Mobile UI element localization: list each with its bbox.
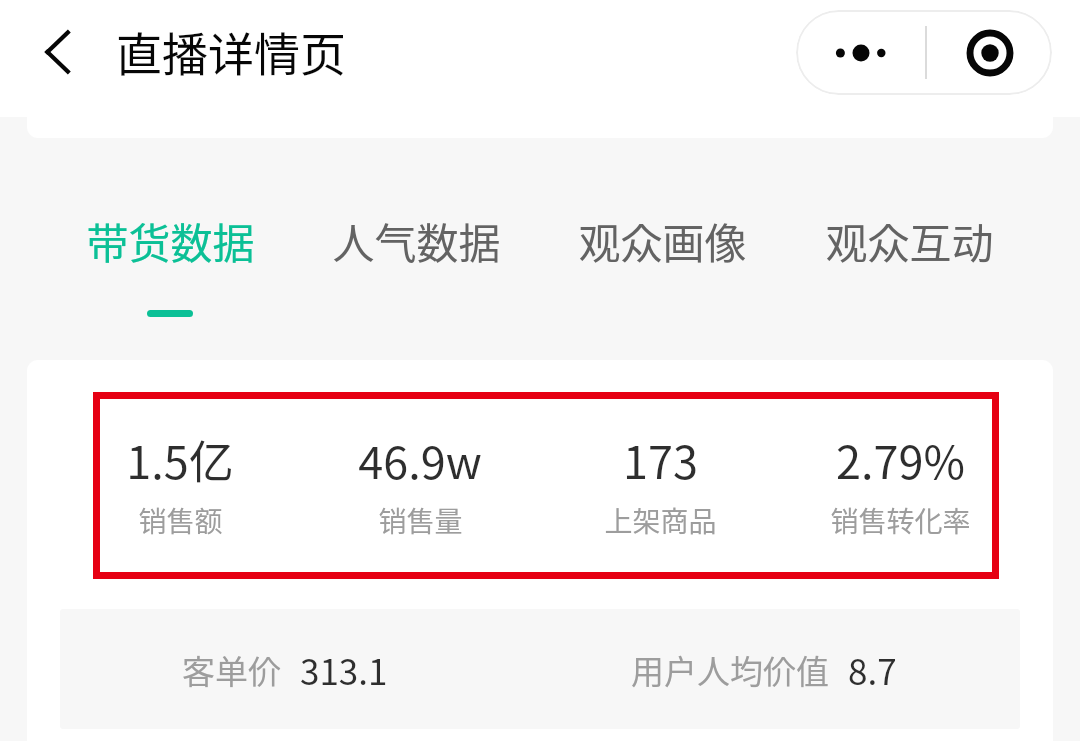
- staticText: 销售量: [378, 500, 463, 541]
- button[interactable]: 带货数据: [47, 210, 293, 320]
- staticText: 46.9w: [358, 427, 482, 487]
- staticText: 2.79%: [836, 427, 965, 487]
- button[interactable]: Back: [22, 21, 84, 83]
- staticText: 客单价: [182, 646, 281, 694]
- staticText: 观众互动: [825, 210, 994, 271]
- button[interactable]: 46.9w: [300, 427, 540, 487]
- staticText: 8.7: [848, 644, 897, 695]
- staticText: 带货数据: [86, 210, 255, 271]
- button[interactable]: 观众互动: [786, 210, 1033, 320]
- staticText: 直播详情页: [116, 18, 346, 85]
- staticText: 1.5亿: [126, 427, 234, 487]
- button[interactable]: More options: [796, 10, 925, 95]
- button[interactable]: 人气数据: [293, 210, 539, 320]
- button[interactable]: Close: [927, 10, 1052, 95]
- button[interactable]: 173: [540, 427, 780, 487]
- staticText: 人气数据: [332, 210, 501, 271]
- staticText: 销售额: [138, 500, 223, 541]
- staticText: 销售转化率: [830, 500, 971, 541]
- staticText: 173: [623, 427, 698, 487]
- staticText: 用户人均价值: [631, 646, 829, 694]
- button[interactable]: 用户人均价值: [536, 609, 992, 729]
- button[interactable]: 客单价: [60, 609, 509, 729]
- staticText: 上架商品: [604, 500, 717, 541]
- button[interactable]: 观众画像: [539, 210, 786, 320]
- staticText: 313.1: [300, 644, 388, 695]
- button[interactable]: 1.5亿: [60, 427, 300, 487]
- staticText: 观众画像: [578, 210, 747, 271]
- button[interactable]: 2.79%: [780, 427, 1020, 487]
